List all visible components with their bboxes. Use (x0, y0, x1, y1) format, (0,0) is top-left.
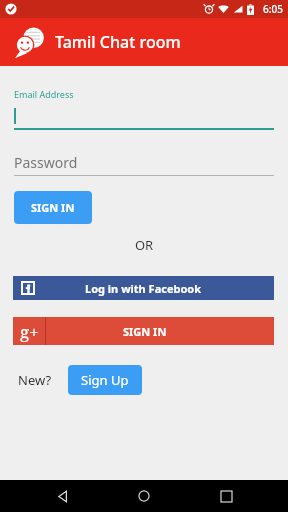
button[interactable]: Back (42, 480, 82, 512)
button[interactable]: Log in with Facebook (13, 276, 274, 300)
staticText: 6:05 (263, 2, 283, 16)
staticText: SIGN IN (31, 200, 75, 215)
staticText: SIGN IN (123, 324, 167, 339)
staticText: Email Address (14, 88, 74, 100)
staticText: OR (0, 236, 288, 254)
button[interactable]: Recent apps (206, 480, 246, 512)
staticText: Tamil Chat room (55, 31, 181, 53)
button[interactable] (14, 106, 274, 126)
staticText: g+ (20, 320, 39, 343)
staticText: New? (18, 371, 52, 389)
staticText: Password (14, 153, 78, 172)
button[interactable]: Home (124, 480, 164, 512)
button[interactable]: g+ (13, 317, 274, 345)
button[interactable]: SIGN IN (14, 191, 92, 224)
button[interactable]: Sign Up (68, 365, 142, 395)
staticText: Log in with Facebook (85, 281, 202, 296)
staticText: Sign Up (81, 371, 129, 389)
button[interactable]: Password (14, 151, 274, 173)
